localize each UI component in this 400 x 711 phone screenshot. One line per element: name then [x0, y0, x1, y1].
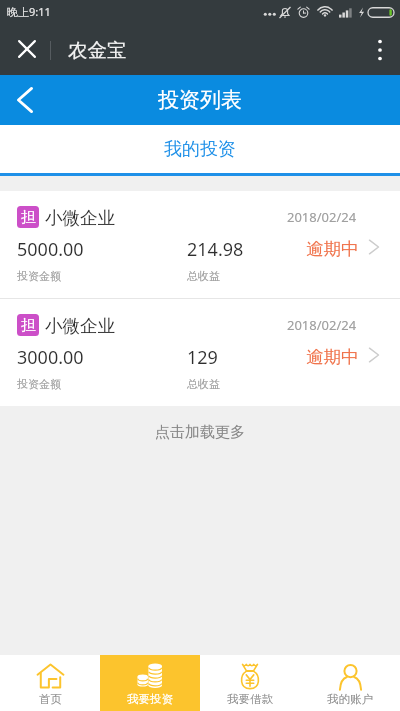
- staticText: 逾期中: [306, 346, 359, 368]
- staticText: 首页: [39, 692, 62, 706]
- staticText: 我要借款: [227, 692, 273, 706]
- staticText: 农金宝: [68, 38, 127, 63]
- staticText: 担: [21, 208, 36, 227]
- button[interactable]: 我要投资: [100, 655, 200, 711]
- staticText: 小微企业: [45, 315, 115, 337]
- staticText: 5000.00: [17, 237, 84, 262]
- button[interactable]: 担: [0, 299, 400, 406]
- button[interactable]: 我要借款: [200, 655, 300, 711]
- button[interactable]: 我的账户: [300, 655, 400, 711]
- staticText: 总收益: [187, 377, 220, 391]
- button[interactable]: 首页: [0, 655, 100, 711]
- staticText: 2018/02/24: [287, 208, 357, 226]
- button[interactable]: More options: [356, 25, 400, 75]
- staticText: 投资列表: [158, 87, 242, 113]
- staticText: 晚上9:11: [7, 4, 51, 19]
- staticText: 3000.00: [17, 345, 84, 370]
- button[interactable]: Close: [0, 25, 54, 75]
- button[interactable]: 担: [0, 191, 400, 298]
- button[interactable]: Back: [0, 75, 46, 125]
- staticText: 小微企业: [45, 207, 115, 229]
- staticText: 129: [187, 345, 218, 370]
- staticText: 我要投资: [127, 692, 173, 706]
- staticText: 我的投资: [164, 138, 236, 161]
- button[interactable]: 点击加载更多: [0, 406, 400, 458]
- staticText: 总收益: [187, 269, 220, 283]
- staticText: 214.98: [187, 237, 244, 262]
- staticText: 2018/02/24: [287, 316, 357, 334]
- staticText: 投资金额: [17, 269, 61, 283]
- staticText: 我的账户: [327, 692, 373, 706]
- staticText: 担: [21, 316, 36, 335]
- staticText: 逾期中: [306, 238, 359, 260]
- staticText: 投资金额: [17, 377, 61, 391]
- button[interactable]: 我的投资: [0, 125, 400, 173]
- staticText: 点击加载更多: [155, 423, 245, 442]
